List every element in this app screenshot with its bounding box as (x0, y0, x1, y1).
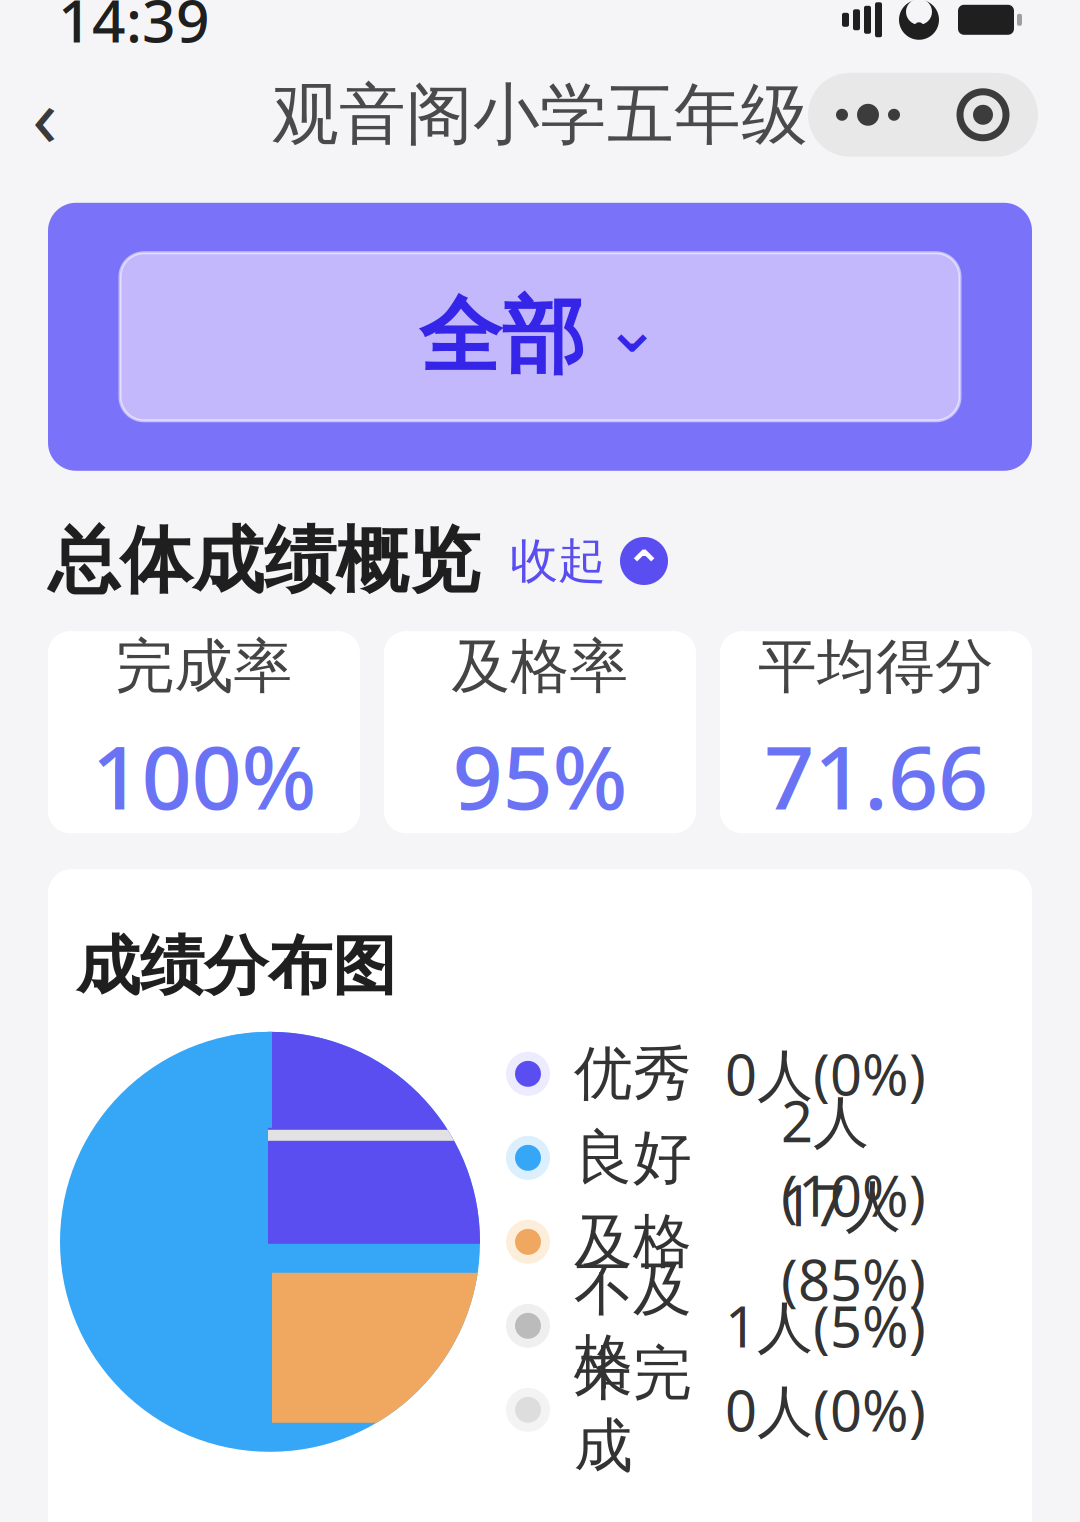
staticText: 平均得分 (758, 631, 994, 703)
staticText: 优秀 (574, 1038, 692, 1110)
button[interactable]: 返回 (0, 70, 90, 160)
staticText: 14:39 (58, 0, 210, 59)
button[interactable]: 及格率 (384, 631, 696, 833)
staticText: 收起 (510, 531, 606, 590)
staticText: ⌃ (625, 541, 663, 593)
button[interactable]: 平均得分 (720, 631, 1032, 833)
button[interactable]: 完成率 (48, 631, 360, 833)
staticText: 100% (91, 717, 316, 834)
staticText: 0人(0%) (725, 1373, 926, 1447)
staticText: 良好 (574, 1122, 692, 1194)
staticText: ‹ (32, 60, 58, 170)
staticText: 观音阁小学五年级 (272, 74, 808, 156)
staticText: 71.66 (764, 717, 988, 834)
button[interactable]: 更多 (808, 73, 928, 157)
staticText: 0人(0%) (725, 1037, 926, 1111)
button[interactable]: 未完成 (506, 1368, 926, 1452)
staticText: 总体成绩概览 (48, 517, 480, 605)
staticText: ⌄ (603, 288, 661, 367)
staticText: 及格 (574, 1206, 692, 1278)
button[interactable]: 收起 (480, 526, 668, 596)
staticText: 不及格 (574, 1254, 692, 1398)
button[interactable]: 及格 (506, 1200, 926, 1284)
button[interactable]: 不及格 (506, 1284, 926, 1368)
button[interactable]: 良好 (506, 1116, 926, 1200)
staticText: 成绩分布图 (76, 927, 396, 1006)
button[interactable]: 优秀 (506, 1032, 926, 1116)
button[interactable]: 全部 (48, 203, 1032, 471)
staticText: 2人(10%) (781, 1083, 926, 1232)
staticText: 及格率 (451, 631, 628, 703)
button[interactable]: 胶囊按钮 (928, 73, 1038, 157)
staticText: 1人(5%) (725, 1289, 926, 1363)
staticText: 全部 (419, 286, 585, 387)
staticText: 17人(85%) (781, 1167, 926, 1316)
staticText: 95% (452, 717, 627, 834)
staticText: 完成率 (115, 631, 292, 703)
staticText: 未完成 (574, 1338, 692, 1482)
